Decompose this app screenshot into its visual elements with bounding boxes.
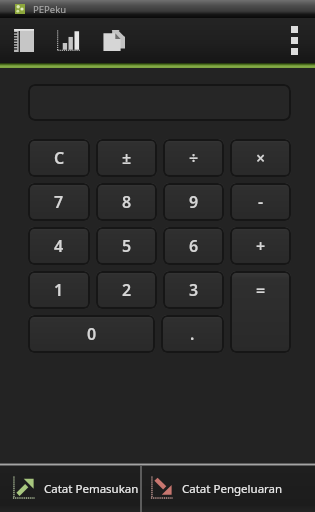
staticText: 1 [54,279,64,301]
button[interactable]: 4 [28,227,90,265]
staticText: 0 [87,323,97,345]
staticText: C [54,147,65,169]
button[interactable]: 0 [28,315,155,353]
staticText: - [258,191,264,213]
button[interactable]: Laporan [92,18,136,63]
button[interactable]: 1 [28,271,90,309]
button[interactable]: = [230,271,291,353]
button[interactable]: 8 [96,183,157,221]
staticText: Catat Pemasukan [44,481,139,497]
button[interactable]: 7 [28,183,90,221]
staticText: 6 [189,235,199,257]
staticText: ± [122,147,132,169]
button[interactable]: × [230,139,291,177]
staticText: . [190,323,195,345]
button[interactable]: Daftar catatan [3,18,44,63]
button[interactable]: 3 [163,271,224,309]
staticText: 2 [122,279,132,301]
staticText: × [256,147,266,169]
button[interactable]: Catat Pemasukan [0,466,140,512]
button[interactable]: ± [96,139,157,177]
button[interactable]: 9 [163,183,224,221]
staticText: 7 [54,191,64,213]
button[interactable]: Catat Pengeluaran [142,466,315,512]
staticText: 3 [189,279,199,301]
staticText: 8 [122,191,132,213]
staticText: = [256,279,266,301]
button[interactable]: ÷ [163,139,224,177]
staticText: 9 [189,191,199,213]
button[interactable]: C [28,139,90,177]
staticText: PEPeku [33,3,67,16]
staticText: 4 [54,235,64,257]
button[interactable]: + [230,227,291,265]
button[interactable]: . [161,315,224,353]
staticText: ÷ [189,147,199,169]
staticText: + [256,235,266,257]
button[interactable]: - [230,183,291,221]
button[interactable]: 5 [96,227,157,265]
button[interactable]: Grafik [46,18,90,63]
button[interactable]: 6 [163,227,224,265]
button[interactable]: 2 [96,271,157,309]
button[interactable]: Opsi lainnya [277,18,311,63]
staticText: Catat Pengeluaran [182,481,283,497]
staticText: 5 [122,235,132,257]
